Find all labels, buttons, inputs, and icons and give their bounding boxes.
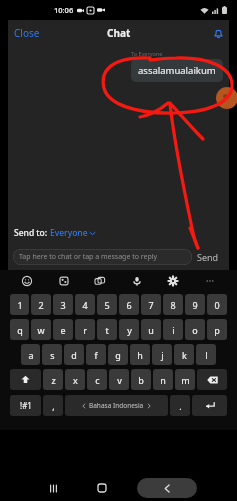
button[interactable]: Everyone <box>50 227 95 239</box>
button[interactable]: GIF <box>91 272 109 290</box>
button[interactable]: t <box>97 319 117 340</box>
button[interactable]: z <box>43 369 63 390</box>
button[interactable]: !#1 <box>10 395 41 416</box>
button[interactable]: 8 <box>163 294 183 315</box>
button[interactable]: l <box>196 344 216 365</box>
button[interactable]: Shift <box>10 369 41 390</box>
staticText: Send to: <box>14 227 50 239</box>
button[interactable]: Backspace <box>197 369 227 390</box>
staticText: x <box>73 374 78 386</box>
button[interactable]: r <box>75 319 95 340</box>
button[interactable]: 4 <box>75 294 95 315</box>
button[interactable]: s <box>42 344 62 365</box>
button[interactable]: 3 <box>53 294 73 315</box>
button[interactable]: d <box>64 344 84 365</box>
button[interactable]: i <box>163 319 183 340</box>
button[interactable]: o <box>185 319 205 340</box>
button[interactable]: Home <box>89 478 115 498</box>
staticText: p <box>214 324 220 336</box>
button[interactable]: f <box>86 344 106 365</box>
button[interactable]: Back <box>137 478 197 498</box>
staticText: 10:06 <box>54 5 74 15</box>
button[interactable]: v <box>109 369 129 390</box>
button[interactable]: . <box>170 395 190 416</box>
button[interactable]: Bahasa Indonesia <box>65 395 168 416</box>
staticText: 0 <box>214 299 220 311</box>
staticText: r <box>83 324 87 336</box>
button[interactable]: Recent apps <box>40 478 66 498</box>
staticText: 9 <box>192 299 198 311</box>
staticText: e <box>60 324 66 336</box>
staticText: o <box>192 324 198 336</box>
button[interactable]: Tap here to chat or tap a message to rep… <box>13 249 192 265</box>
button[interactable]: b <box>131 369 151 390</box>
staticText: h <box>137 349 143 361</box>
staticText: 8 <box>170 299 176 311</box>
staticText: s <box>50 349 55 361</box>
staticText: Chat <box>107 26 131 40</box>
button[interactable]: c <box>87 369 107 390</box>
button[interactable]: h <box>130 344 150 365</box>
staticText: 5 <box>104 299 110 311</box>
staticText: v <box>117 374 122 386</box>
button[interactable]: 0 <box>207 294 227 315</box>
staticText: 2 <box>38 299 44 311</box>
staticText: w <box>37 324 45 336</box>
button[interactable]: , <box>43 395 63 416</box>
staticText: Everyone <box>50 227 88 239</box>
button[interactable]: k <box>174 344 194 365</box>
button[interactable]: 7 <box>141 294 161 315</box>
button[interactable]: Notifications <box>208 25 229 42</box>
staticText: t <box>105 324 109 336</box>
button[interactable]: e <box>53 319 73 340</box>
staticText: n <box>160 374 166 386</box>
button[interactable]: a <box>21 344 40 365</box>
staticText: c <box>95 374 100 386</box>
staticText: Close <box>14 26 40 40</box>
staticText: g <box>115 349 121 361</box>
button[interactable]: 6 <box>119 294 139 315</box>
button[interactable]: 1 <box>10 294 29 315</box>
button[interactable]: 9 <box>185 294 205 315</box>
staticText: , <box>52 400 55 412</box>
button[interactable]: assalamualaikum <box>131 59 223 82</box>
staticText: Bahasa Indonesia <box>89 401 144 410</box>
button[interactable]: Close <box>8 22 46 44</box>
staticText: z <box>51 374 56 386</box>
button[interactable]: m <box>175 369 195 390</box>
button[interactable]: Keyboard settings <box>164 272 182 290</box>
staticText: Send <box>197 251 219 263</box>
button[interactable]: Send <box>192 248 224 266</box>
staticText: 7 <box>148 299 154 311</box>
button[interactable]: y <box>119 319 139 340</box>
button[interactable]: p <box>207 319 227 340</box>
staticText: 1 <box>17 299 23 311</box>
button[interactable]: x <box>65 369 85 390</box>
button[interactable]: n <box>153 369 173 390</box>
button[interactable]: More options <box>201 272 219 290</box>
button[interactable]: q <box>10 319 29 340</box>
staticText: m <box>181 374 190 386</box>
staticText: 3 <box>60 299 66 311</box>
button[interactable]: Enter <box>192 395 227 416</box>
staticText: 4 <box>82 299 88 311</box>
button[interactable]: g <box>108 344 128 365</box>
staticText: 6 <box>126 299 132 311</box>
staticText: j <box>161 349 164 361</box>
staticText: l <box>205 349 208 361</box>
staticText: q <box>17 324 23 336</box>
button[interactable]: Emoji <box>18 272 36 290</box>
button[interactable]: w <box>31 319 51 340</box>
staticText: b <box>138 374 144 386</box>
button[interactable]: Stickers <box>55 272 73 290</box>
staticText: f <box>94 349 98 361</box>
staticText: To Everyone <box>131 50 163 57</box>
button[interactable]: Voice input <box>128 272 146 290</box>
staticText: . <box>179 400 182 412</box>
staticText: d <box>71 349 77 361</box>
button[interactable]: j <box>152 344 172 365</box>
button[interactable]: 5 <box>97 294 117 315</box>
button[interactable]: 2 <box>31 294 51 315</box>
staticText: a <box>28 349 34 361</box>
button[interactable]: u <box>141 319 161 340</box>
